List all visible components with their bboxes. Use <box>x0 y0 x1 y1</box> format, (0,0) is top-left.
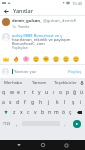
button[interactable]: d <box>14 97 21 107</box>
staticText: w <box>10 89 14 96</box>
staticText: b <box>41 109 45 116</box>
staticText: acikiyi9888 Bonushost ve ç <box>12 33 63 38</box>
button[interactable]: Send <box>69 117 85 130</box>
button[interactable]: p <box>64 87 71 97</box>
button[interactable]: ş <box>69 97 77 107</box>
button[interactable]: Emoji reaction <box>51 54 61 64</box>
staticText: j <box>48 99 50 106</box>
staticText: f <box>24 99 26 106</box>
staticText: ı <box>53 89 55 96</box>
staticText: 10:40 <box>72 1 83 6</box>
staticText: BonushostC .com <box>12 41 45 46</box>
button[interactable]: z <box>11 107 18 117</box>
staticText: ç <box>69 109 72 116</box>
staticText: y <box>38 89 41 96</box>
staticText: Merhaba <box>4 80 22 86</box>
button[interactable]: n <box>46 107 53 117</box>
staticText: z <box>13 109 16 116</box>
button[interactable]: h <box>37 97 45 107</box>
button[interactable]: v <box>32 107 39 117</box>
staticText: x <box>20 109 23 116</box>
staticText: hazırlanan, etkinlik ve paylaşım <box>12 37 71 42</box>
staticText: Yanıtlar <box>13 7 34 14</box>
button[interactable]: Emoji reaction <box>11 54 21 64</box>
button[interactable]: Emoji reaction <box>41 54 51 64</box>
button[interactable]: Voice input <box>78 78 85 87</box>
button[interactable]: Recents <box>61 140 72 150</box>
staticText: q <box>2 89 6 96</box>
button[interactable]: a <box>0 97 7 107</box>
staticText: r <box>24 89 27 96</box>
button[interactable]: x <box>18 107 25 117</box>
staticText: d <box>16 99 20 106</box>
staticText: m <box>54 109 59 116</box>
button[interactable]: . <box>61 117 69 130</box>
staticText: . <box>64 121 66 127</box>
button[interactable]: ü <box>78 87 85 97</box>
staticText: ?123 <box>3 121 11 126</box>
button[interactable]: ö <box>60 107 67 117</box>
button[interactable]: Merhaba <box>0 78 26 87</box>
staticText: i <box>80 99 82 106</box>
button[interactable]: k <box>53 97 61 107</box>
staticText: Yanıtla <box>18 24 30 29</box>
staticText: Paylaş <box>68 69 82 75</box>
button[interactable]: f <box>21 97 29 107</box>
staticText: ş <box>72 99 75 106</box>
button[interactable]: s <box>7 97 14 107</box>
button[interactable]: u <box>43 87 50 97</box>
button[interactable]: , <box>13 117 21 130</box>
staticText: a <box>2 99 5 106</box>
staticText: Yanıtını yaz <box>14 69 36 75</box>
button[interactable]: t <box>29 87 36 97</box>
button[interactable]: y <box>36 87 43 97</box>
button[interactable]: Tamam <box>26 78 52 87</box>
staticText: Paylaşılan <box>12 45 28 50</box>
staticText: e <box>17 89 20 96</box>
button[interactable]: Backspace <box>74 107 85 117</box>
staticText: g <box>31 99 35 106</box>
staticText: l <box>64 99 66 106</box>
staticText: t <box>32 89 34 96</box>
staticText: c <box>27 109 30 116</box>
button[interactable]: w <box>8 87 15 97</box>
button[interactable]: r <box>22 87 29 97</box>
staticText: s <box>9 99 12 106</box>
staticText: Tamam <box>32 80 47 86</box>
button[interactable]: o <box>57 87 64 97</box>
button[interactable]: e <box>15 87 22 97</box>
button[interactable]: m <box>53 107 60 117</box>
button[interactable]: Teşekkürler <box>52 78 78 87</box>
button[interactable]: j <box>45 97 53 107</box>
button[interactable]: i <box>77 97 85 107</box>
button[interactable]: Emoji reaction <box>21 54 31 64</box>
staticText: p <box>66 89 70 96</box>
staticText: v <box>34 109 37 116</box>
button[interactable]: Emoji reaction <box>1 54 11 64</box>
button[interactable]: q <box>0 87 8 97</box>
button[interactable]: ı <box>50 87 57 97</box>
button[interactable]: Home <box>37 140 48 150</box>
button[interactable]: Shift <box>0 107 11 117</box>
button[interactable]: c <box>25 107 32 117</box>
staticText: @gulcan_demir8 <box>43 18 76 24</box>
button[interactable]: b <box>39 107 46 117</box>
button[interactable]: ç <box>67 107 74 117</box>
staticText: h <box>39 99 43 106</box>
staticText: ü <box>80 89 84 96</box>
button[interactable]: Back <box>2 7 10 15</box>
button[interactable]: Back <box>13 140 24 150</box>
button[interactable]: g <box>29 97 37 107</box>
button[interactable]: Paylaş <box>67 67 83 77</box>
button[interactable]: ?123 <box>0 117 13 130</box>
staticText: n <box>48 109 52 116</box>
button[interactable]: Emoji reaction <box>71 54 81 64</box>
staticText: o <box>59 89 63 96</box>
button[interactable]: Emoji reaction <box>31 54 41 64</box>
button[interactable]: Emoji reaction <box>61 54 71 64</box>
button[interactable]: ğ <box>71 87 78 97</box>
staticText: , <box>16 121 18 127</box>
staticText: 1s <box>12 24 16 29</box>
button[interactable]: l <box>61 97 69 107</box>
